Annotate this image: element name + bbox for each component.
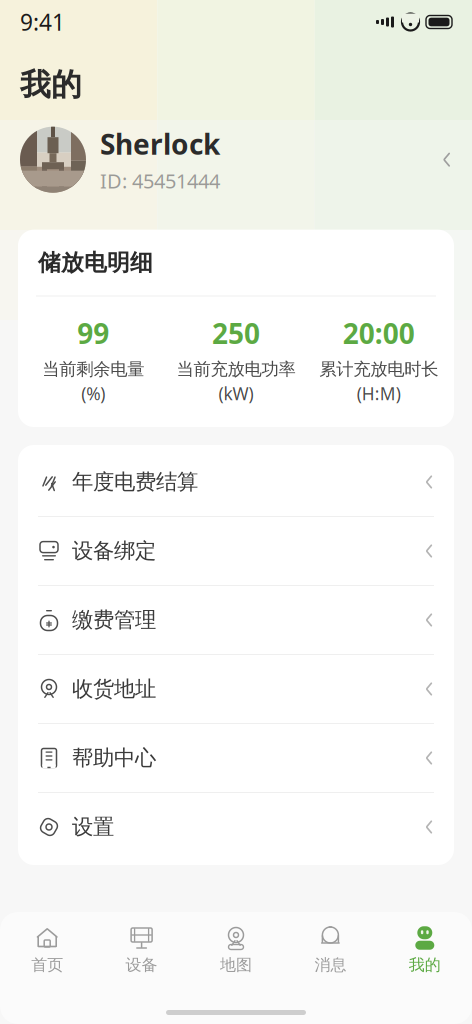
staticText: (kW) (218, 382, 253, 405)
staticText: 250 (212, 314, 260, 352)
button[interactable]: 我的 (378, 916, 472, 981)
staticText: (H:M) (357, 382, 401, 405)
button[interactable]: 缴费管理 (18, 586, 454, 655)
staticText: 累计充放电时长 (319, 359, 438, 380)
button[interactable]: 帮助中心 (18, 724, 454, 793)
staticText: 当前充放电功率 (176, 359, 295, 380)
staticText: 帮助中心 (72, 745, 156, 771)
staticText: 首页 (31, 955, 63, 975)
staticText: 9:41 (20, 7, 65, 37)
staticText: 年度电费结算 (72, 469, 198, 495)
staticText: 设备绑定 (72, 538, 156, 564)
button[interactable]: 设置 (18, 793, 454, 862)
button[interactable]: 设备 (94, 916, 189, 981)
staticText: ID: 45451444 (100, 167, 220, 194)
staticText: (%) (81, 382, 105, 405)
staticText: 收货地址 (72, 676, 156, 702)
staticText: 储放电明细 (38, 249, 153, 276)
button[interactable]: 首页 (0, 916, 94, 981)
staticText: 当前剩余电量 (42, 359, 144, 380)
button[interactable]: 年度电费结算 (18, 448, 454, 517)
staticText: 缴费管理 (72, 607, 156, 633)
staticText: 我的 (20, 66, 82, 104)
staticText: 设置 (72, 814, 114, 840)
button[interactable]: 收货地址 (18, 655, 454, 724)
button[interactable]: 设备绑定 (18, 517, 454, 586)
staticText: 99 (77, 314, 109, 352)
staticText: 地图 (220, 955, 252, 975)
staticText: 我的 (409, 955, 441, 975)
button[interactable]: 地图 (189, 916, 283, 981)
staticText: 设备 (126, 955, 158, 975)
button[interactable]: Sherlock (0, 112, 472, 208)
staticText: 20:00 (343, 314, 415, 352)
button[interactable]: 消息 (283, 916, 378, 981)
staticText: Sherlock (100, 125, 220, 162)
staticText: 消息 (314, 955, 346, 975)
